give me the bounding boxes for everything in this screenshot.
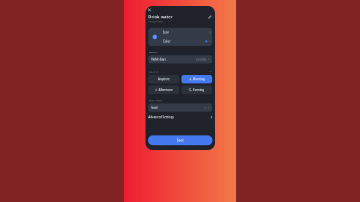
staticText: Drink water (161, 51, 297, 81)
staticText: Regular habit (161, 83, 243, 101)
button[interactable]: Icon (161, 129, 360, 179)
button[interactable]: Close (153, 14, 181, 42)
button[interactable]: Color (161, 179, 360, 202)
